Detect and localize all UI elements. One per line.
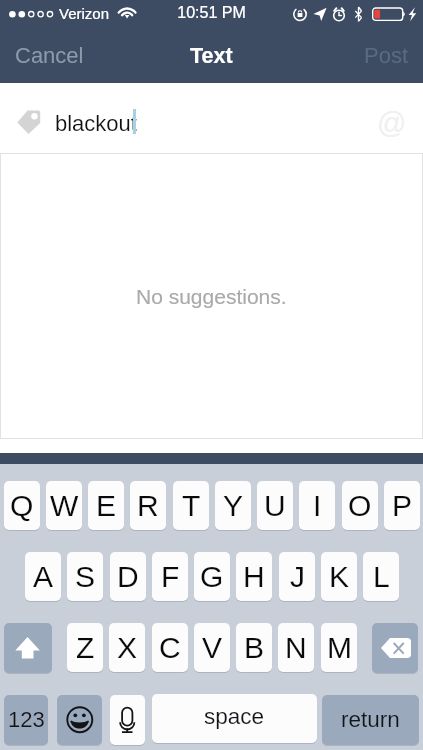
staticText: C bbox=[159, 631, 181, 665]
button[interactable]: 123 bbox=[4, 695, 48, 745]
button[interactable]: Post bbox=[346, 33, 423, 78]
staticText: 10:51 PM bbox=[0, 4, 423, 22]
button[interactable]: P bbox=[384, 481, 420, 530]
staticText: P bbox=[392, 489, 413, 523]
button[interactable]: A bbox=[25, 552, 61, 601]
button[interactable]: E bbox=[88, 481, 124, 530]
staticText: F bbox=[161, 560, 180, 594]
button[interactable]: R bbox=[130, 481, 166, 530]
button[interactable]: D bbox=[110, 552, 146, 601]
button[interactable]: O bbox=[342, 481, 378, 530]
button[interactable]: G bbox=[194, 552, 230, 601]
button[interactable]: S bbox=[67, 552, 103, 601]
staticText: @ bbox=[377, 107, 407, 139]
staticText: E bbox=[96, 489, 117, 523]
staticText: K bbox=[329, 560, 350, 594]
staticText: return bbox=[341, 707, 400, 732]
staticText: L bbox=[373, 560, 390, 594]
staticText: blackout bbox=[55, 111, 137, 136]
button[interactable]: I bbox=[299, 481, 335, 530]
button[interactable]: space bbox=[152, 694, 317, 743]
button[interactable]: F bbox=[152, 552, 188, 601]
staticText: X bbox=[117, 631, 138, 665]
staticText: M bbox=[327, 631, 352, 665]
button[interactable]: L bbox=[363, 552, 399, 601]
button[interactable]: W bbox=[46, 481, 82, 530]
button[interactable]: N bbox=[278, 623, 314, 672]
button[interactable]: V bbox=[194, 623, 230, 672]
button[interactable]: J bbox=[279, 552, 315, 601]
button[interactable]: Z bbox=[67, 623, 103, 672]
button[interactable]: C bbox=[152, 623, 188, 672]
staticText: Cancel bbox=[15, 43, 84, 68]
staticText: Y bbox=[223, 489, 244, 523]
staticText: W bbox=[50, 489, 79, 523]
staticText: S bbox=[75, 560, 96, 594]
button[interactable]: Shift bbox=[4, 623, 52, 673]
staticText: Post bbox=[364, 43, 409, 68]
staticText: D bbox=[117, 560, 139, 594]
staticText: Text bbox=[190, 44, 233, 68]
staticText: space bbox=[204, 704, 265, 729]
button[interactable]: X bbox=[109, 623, 145, 672]
button[interactable]: Emoji bbox=[57, 695, 102, 745]
button[interactable]: B bbox=[236, 623, 272, 672]
staticText: J bbox=[290, 560, 305, 594]
button[interactable]: Y bbox=[215, 481, 251, 530]
button[interactable]: Cancel bbox=[0, 33, 102, 78]
button[interactable]: Microphone bbox=[110, 695, 145, 745]
staticText: No suggestions. bbox=[136, 285, 287, 308]
button[interactable]: K bbox=[321, 552, 357, 601]
staticText: Verizon bbox=[59, 5, 110, 22]
button[interactable]: U bbox=[257, 481, 293, 530]
staticText: B bbox=[244, 631, 265, 665]
staticText: T bbox=[182, 489, 201, 523]
staticText: Z bbox=[76, 631, 95, 665]
staticText: G bbox=[200, 560, 224, 594]
staticText: U bbox=[264, 489, 286, 523]
button[interactable]: H bbox=[236, 552, 272, 601]
staticText: I bbox=[313, 489, 322, 523]
staticText: A bbox=[33, 560, 54, 594]
staticText: O bbox=[348, 489, 372, 523]
staticText: H bbox=[243, 560, 265, 594]
button[interactable]: Q bbox=[4, 481, 40, 530]
button[interactable]: T bbox=[173, 481, 209, 530]
staticText: N bbox=[285, 631, 307, 665]
button[interactable]: Backspace bbox=[372, 623, 418, 673]
staticText: V bbox=[202, 631, 223, 665]
staticText: 123 bbox=[8, 707, 45, 732]
button[interactable]: return bbox=[322, 695, 419, 745]
staticText: Q bbox=[10, 489, 34, 523]
staticText: R bbox=[137, 489, 159, 523]
button[interactable]: M bbox=[321, 623, 357, 672]
button[interactable]: Mention bbox=[373, 104, 411, 142]
